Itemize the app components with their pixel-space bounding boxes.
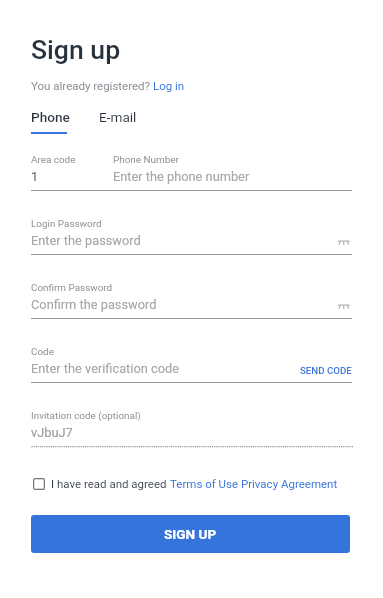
button[interactable]: Log in (153, 79, 185, 92)
button[interactable]: SEND CODE (300, 365, 352, 376)
staticText: SEND CODE (300, 365, 352, 376)
button[interactable]: Show password (335, 234, 353, 252)
staticText: Code (31, 346, 54, 358)
staticText: Enter the verification code (31, 361, 179, 376)
staticText: SIGN UP (164, 526, 217, 542)
button[interactable]: I have read and agreed (31, 477, 338, 490)
staticText: Invitation code (optional) (31, 410, 141, 422)
staticText: Enter the phone number (113, 169, 250, 184)
staticText: You already registered? (31, 79, 153, 92)
staticText: E-mail (99, 109, 137, 125)
staticText: Area code (31, 154, 76, 166)
staticText: vJbuJ7 (31, 425, 73, 440)
button[interactable]: SIGN UP (31, 515, 350, 553)
staticText: Phone (31, 109, 70, 125)
staticText: I have read and agreed (51, 477, 170, 490)
staticText: Login Password (31, 218, 102, 230)
staticText: Confirm the password (31, 297, 157, 312)
button[interactable]: Show confirm password (335, 298, 353, 316)
staticText: Enter the password (31, 233, 141, 248)
staticText: 1 (31, 169, 39, 184)
staticText: Confirm Password (31, 282, 113, 294)
staticText: Terms of Use Privacy Agreement (170, 477, 338, 490)
button[interactable]: Phone (31, 109, 70, 125)
button[interactable]: E-mail (99, 109, 137, 125)
staticText: Phone Number (113, 154, 179, 166)
staticText: Sign up (31, 34, 121, 65)
